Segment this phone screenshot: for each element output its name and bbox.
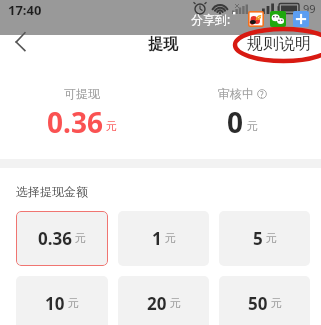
staticText: 元 xyxy=(75,231,86,245)
button[interactable]: 0.36 xyxy=(16,211,108,266)
staticText: ? xyxy=(260,89,264,99)
staticText: 审核中 xyxy=(218,86,254,101)
staticText: 17:40 xyxy=(8,1,42,19)
staticText: 元 xyxy=(106,119,117,133)
staticText: 元 xyxy=(170,296,181,310)
staticText: 1 xyxy=(152,227,162,250)
button[interactable]: 20 xyxy=(118,276,209,325)
staticText: 规则说明 xyxy=(247,34,311,54)
button[interactable]: 10 xyxy=(16,276,108,325)
staticText: 元 xyxy=(271,296,282,310)
staticText: 元 xyxy=(68,296,79,310)
staticText: 选择提现金额 xyxy=(16,184,88,199)
staticText: 0.36 xyxy=(38,227,72,250)
button[interactable]: 1 xyxy=(118,211,209,266)
staticText: 元 xyxy=(247,119,258,133)
staticText: 元 xyxy=(266,231,277,245)
staticText: 99 xyxy=(303,1,316,16)
staticText: 50 xyxy=(248,292,268,315)
staticText: 提现 xyxy=(148,35,178,54)
button[interactable]: 规则说明 xyxy=(247,34,311,54)
button[interactable]: Share to WeChat xyxy=(270,11,286,27)
staticText: 0.36 xyxy=(47,103,103,141)
staticText: 20 xyxy=(147,292,167,315)
button[interactable]: 50 xyxy=(219,276,310,325)
staticText: 5 xyxy=(253,227,263,250)
button[interactable]: More share options xyxy=(293,11,309,27)
staticText: 元 xyxy=(165,231,176,245)
button[interactable]: Back xyxy=(10,28,32,56)
button[interactable]: 5 xyxy=(219,211,310,266)
staticText: 可提现 xyxy=(64,86,100,101)
staticText: 0 xyxy=(227,103,244,141)
staticText: 10 xyxy=(45,292,65,315)
staticText: 分享到: xyxy=(191,11,231,27)
button[interactable]: Share to Weibo xyxy=(248,11,264,27)
